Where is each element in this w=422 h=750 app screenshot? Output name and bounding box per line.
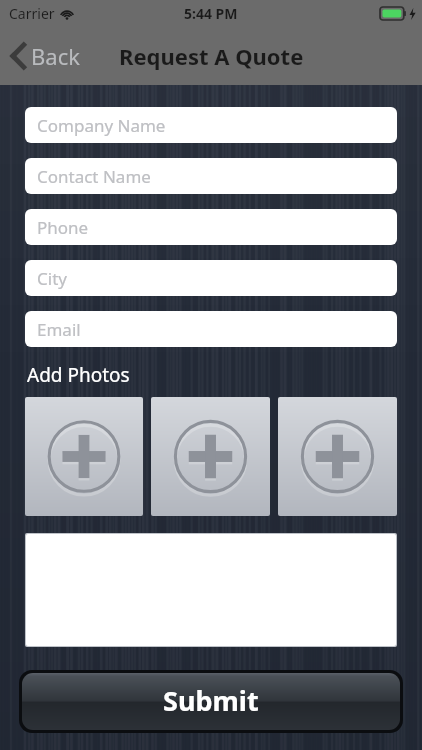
staticText: Company Name bbox=[37, 114, 166, 137]
staticText: Add Photos bbox=[27, 362, 130, 388]
button[interactable]: Phone bbox=[25, 209, 397, 245]
button[interactable]: Add photo bbox=[151, 397, 270, 516]
staticText: Contact Name bbox=[37, 165, 151, 188]
button[interactable]: Submit bbox=[22, 673, 400, 730]
staticText: Email bbox=[37, 318, 81, 341]
button[interactable]: Email bbox=[25, 311, 397, 347]
button[interactable]: Contact Name bbox=[25, 158, 397, 194]
staticText: Carrier bbox=[9, 4, 55, 23]
button[interactable]: City bbox=[25, 260, 397, 296]
button[interactable]: Back bbox=[0, 33, 94, 79]
button[interactable]: Add photo bbox=[278, 397, 397, 516]
staticText: Submit bbox=[163, 682, 259, 719]
button[interactable]: Company Name bbox=[25, 107, 397, 143]
staticText: Phone bbox=[37, 216, 89, 239]
button[interactable]: Add photo bbox=[25, 397, 143, 516]
staticText: City bbox=[37, 267, 67, 290]
staticText: Request A Quote bbox=[119, 41, 304, 71]
staticText: Back bbox=[31, 41, 80, 71]
staticText: 5:44 PM bbox=[184, 4, 238, 23]
